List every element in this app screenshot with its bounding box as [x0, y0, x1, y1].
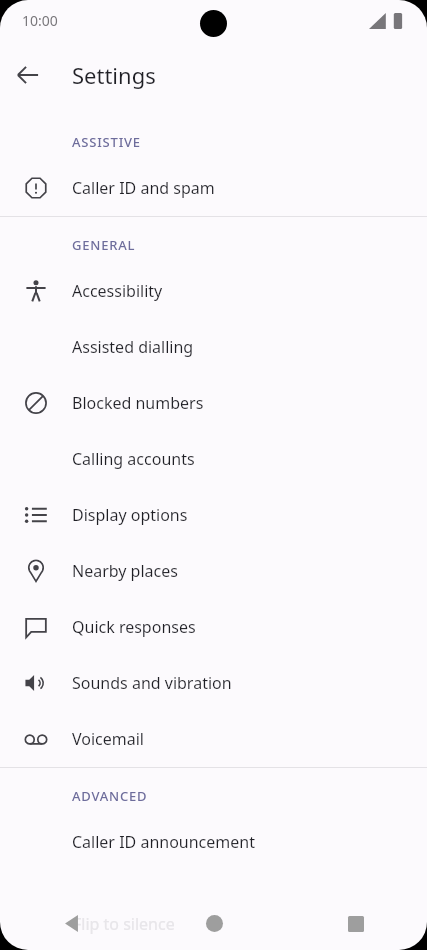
- staticText: Blocked numbers: [72, 392, 204, 414]
- button[interactable]: Accessibility: [0, 263, 427, 319]
- button[interactable]: Display options: [0, 487, 427, 543]
- button[interactable]: Calling accounts: [0, 431, 427, 487]
- staticText: Nearby places: [72, 560, 178, 582]
- staticText: Quick responses: [72, 616, 196, 638]
- button[interactable]: Voicemail: [0, 711, 427, 767]
- staticText: Accessibility: [72, 280, 163, 302]
- button[interactable]: Back: [6, 53, 50, 97]
- staticText: Caller ID and spam: [72, 177, 215, 199]
- button[interactable]: Home: [143, 897, 285, 950]
- button[interactable]: Caller ID and spam: [0, 160, 427, 216]
- button[interactable]: Blocked numbers: [0, 375, 427, 431]
- staticText: ASSISTIVE: [72, 133, 141, 151]
- staticText: Caller ID announcement: [72, 831, 255, 853]
- staticText: Flip to silence: [73, 913, 175, 935]
- staticText: ADVANCED: [72, 787, 148, 805]
- button[interactable]: Assisted dialling: [0, 319, 427, 375]
- staticText: 10:00: [22, 11, 58, 30]
- staticText: Display options: [72, 504, 188, 526]
- button[interactable]: Caller ID announcement: [0, 814, 427, 870]
- button[interactable]: Nearby places: [0, 543, 427, 599]
- staticText: Calling accounts: [72, 448, 195, 470]
- button[interactable]: Sounds and vibration: [0, 655, 427, 711]
- button[interactable]: Quick responses: [0, 599, 427, 655]
- button[interactable]: Back: [0, 897, 143, 950]
- staticText: Voicemail: [72, 728, 144, 750]
- button[interactable]: Recent apps: [285, 897, 427, 950]
- staticText: GENERAL: [72, 236, 136, 254]
- staticText: Assisted dialling: [72, 336, 194, 358]
- staticText: Sounds and vibration: [72, 672, 232, 694]
- staticText: Settings: [72, 60, 156, 90]
